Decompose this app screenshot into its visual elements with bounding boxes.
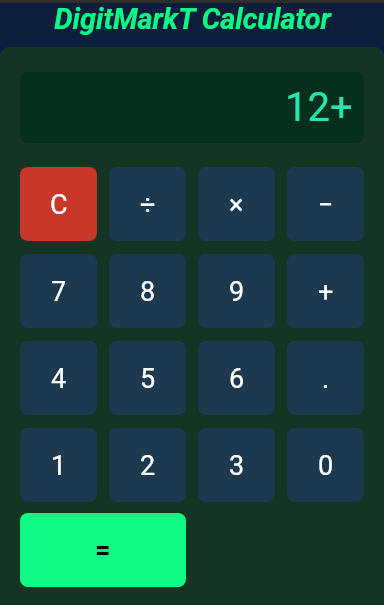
staticText: . bbox=[322, 363, 330, 395]
staticText: = bbox=[95, 534, 111, 566]
button[interactable]: 5 bbox=[109, 341, 186, 415]
button[interactable]: ÷ bbox=[109, 167, 186, 241]
button[interactable]: 9 bbox=[198, 254, 275, 328]
staticText: 5 bbox=[140, 363, 156, 395]
staticText: 0 bbox=[318, 450, 334, 482]
button[interactable]: 2 bbox=[109, 428, 186, 502]
button[interactable]: 8 bbox=[109, 254, 186, 328]
staticText: 9 bbox=[229, 276, 245, 308]
staticText: 1 bbox=[51, 450, 67, 482]
button[interactable]: 1 bbox=[20, 428, 97, 502]
staticText: 2 bbox=[140, 450, 156, 482]
staticText: 4 bbox=[51, 363, 67, 395]
staticText: C bbox=[50, 189, 68, 221]
button[interactable]: − bbox=[287, 167, 364, 241]
staticText: + bbox=[318, 276, 334, 308]
staticText: 8 bbox=[140, 276, 156, 308]
staticText: × bbox=[229, 189, 244, 221]
button[interactable]: . bbox=[287, 341, 364, 415]
button[interactable]: C bbox=[20, 167, 97, 241]
button[interactable]: 3 bbox=[198, 428, 275, 502]
button[interactable]: 7 bbox=[20, 254, 97, 328]
staticText: 7 bbox=[51, 276, 67, 308]
button[interactable]: 6 bbox=[198, 341, 275, 415]
button[interactable]: × bbox=[198, 167, 275, 241]
button[interactable]: + bbox=[287, 254, 364, 328]
staticText: ÷ bbox=[140, 189, 156, 221]
staticText: 6 bbox=[229, 363, 245, 395]
button[interactable]: 0 bbox=[287, 428, 364, 502]
button[interactable]: = bbox=[20, 513, 186, 587]
staticText: 12+ bbox=[285, 84, 353, 131]
button[interactable]: 4 bbox=[20, 341, 97, 415]
staticText: − bbox=[318, 189, 334, 221]
staticText: DigitMarkT Calculator bbox=[54, 2, 331, 36]
staticText: 3 bbox=[229, 450, 245, 482]
